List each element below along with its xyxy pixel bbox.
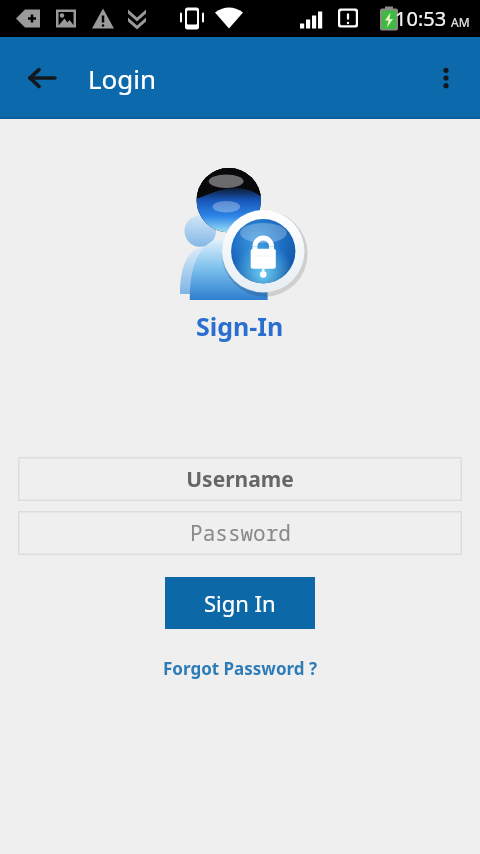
staticText: Forgot Password ? [163, 657, 318, 680]
button[interactable]: Forgot Password ? [151, 651, 330, 686]
staticText: Password [190, 519, 291, 548]
button[interactable]: Username [18, 457, 462, 501]
staticText: Sign In [204, 588, 276, 618]
button[interactable]: Sign In [165, 577, 315, 629]
button[interactable]: Password [18, 511, 462, 555]
button[interactable]: More options [420, 52, 472, 104]
button[interactable]: Back [14, 50, 70, 106]
staticText: Username [186, 465, 294, 494]
staticText: 10:53 [395, 5, 447, 32]
staticText: Sign-In [196, 309, 284, 343]
staticText: AM [451, 14, 470, 30]
staticText: Login [88, 61, 157, 96]
